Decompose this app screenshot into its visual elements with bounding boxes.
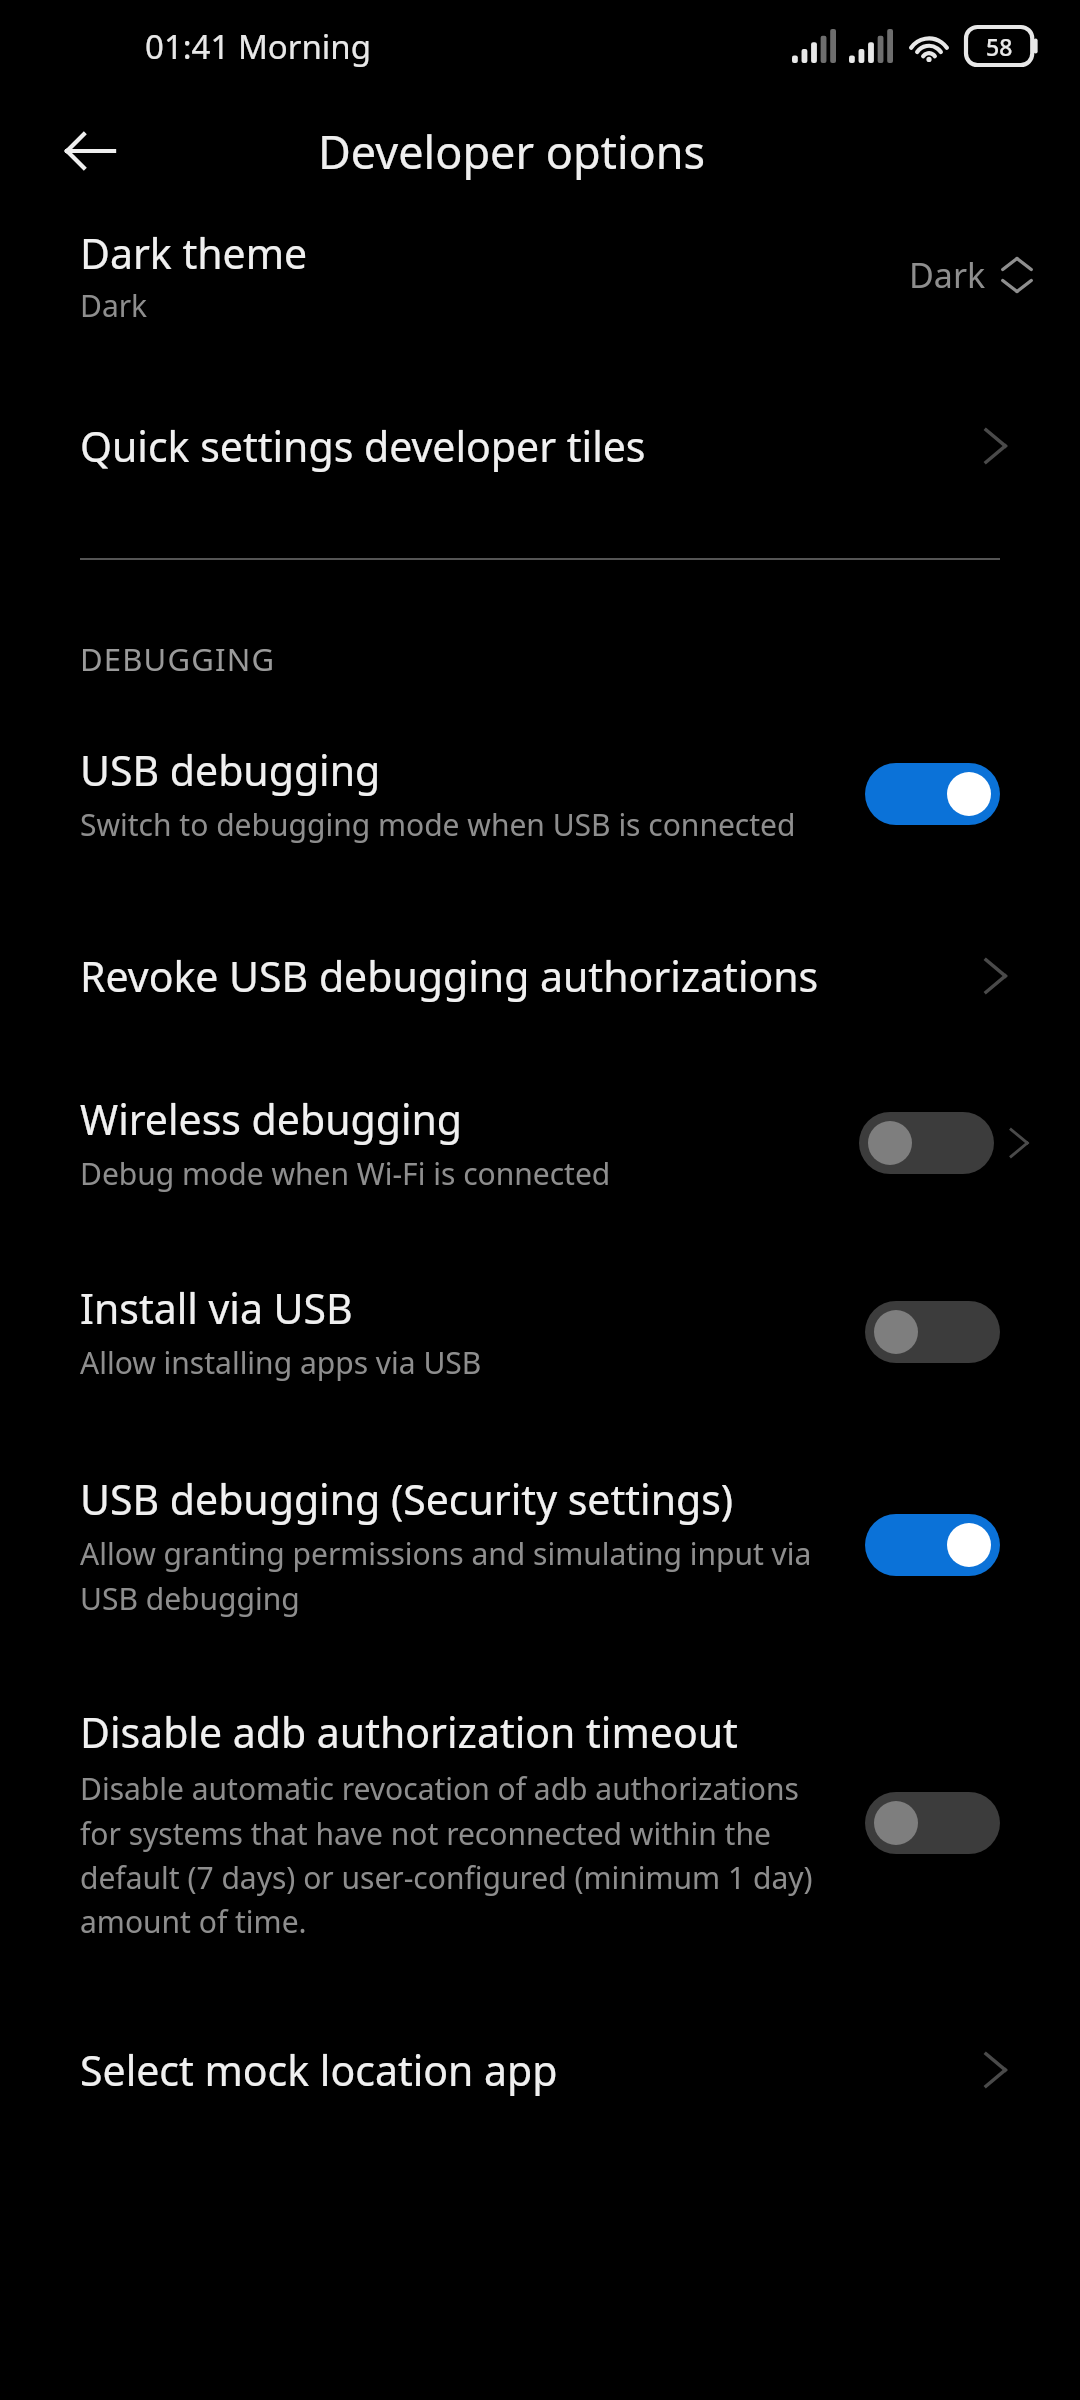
button[interactable]: Off	[865, 1792, 1000, 1854]
staticText: Quick settings developer tiles	[80, 418, 968, 474]
staticText: Developer options	[318, 121, 706, 182]
button[interactable]: USB debugging	[0, 742, 1080, 845]
staticText: Allow granting permissions and simulatin…	[80, 1533, 839, 1618]
staticText: DEBUGGING	[80, 638, 276, 680]
staticText: Debug mode when Wi-Fi is connected	[80, 1153, 611, 1194]
staticText: Allow installing apps via USB	[80, 1342, 482, 1383]
staticText: USB debugging (Security settings)	[80, 1471, 734, 1527]
staticText: USB debugging	[80, 742, 381, 798]
staticText: Select mock location app	[80, 2042, 968, 2098]
staticText: Switch to debugging mode when USB is con…	[80, 804, 796, 845]
button[interactable]: Disable adb authorization timeout	[0, 1704, 1080, 1941]
staticText: Disable adb authorization timeout	[80, 1704, 738, 1760]
staticText: Install via USB	[80, 1280, 353, 1336]
button[interactable]: Back	[52, 113, 128, 189]
button[interactable]: Revoke USB debugging authorizations	[0, 933, 1080, 1019]
staticText: Dark	[909, 252, 986, 298]
staticText: Dark	[80, 285, 148, 326]
staticText: Disable automatic revocation of adb auth…	[80, 1768, 835, 1941]
button[interactable]: Select mock location app	[0, 2025, 1080, 2115]
staticText: 01:41 Morning	[145, 24, 372, 69]
button[interactable]: Wireless debugging	[0, 1091, 1080, 1194]
staticText: Wireless debugging	[80, 1091, 463, 1147]
button[interactable]: On	[865, 763, 1000, 825]
staticText: Dark theme	[80, 225, 308, 281]
button[interactable]: Off	[865, 1301, 1000, 1363]
button[interactable]: Quick settings developer tiles	[0, 402, 1080, 490]
button[interactable]: USB debugging (Security settings)	[0, 1471, 1080, 1618]
staticText: Revoke USB debugging authorizations	[80, 948, 968, 1004]
button[interactable]: On	[865, 1514, 1000, 1576]
button[interactable]: Off	[859, 1112, 994, 1174]
button[interactable]: Install via USB	[0, 1280, 1080, 1383]
staticText: 58	[986, 31, 1013, 62]
button[interactable]: Dark theme	[0, 210, 1080, 340]
